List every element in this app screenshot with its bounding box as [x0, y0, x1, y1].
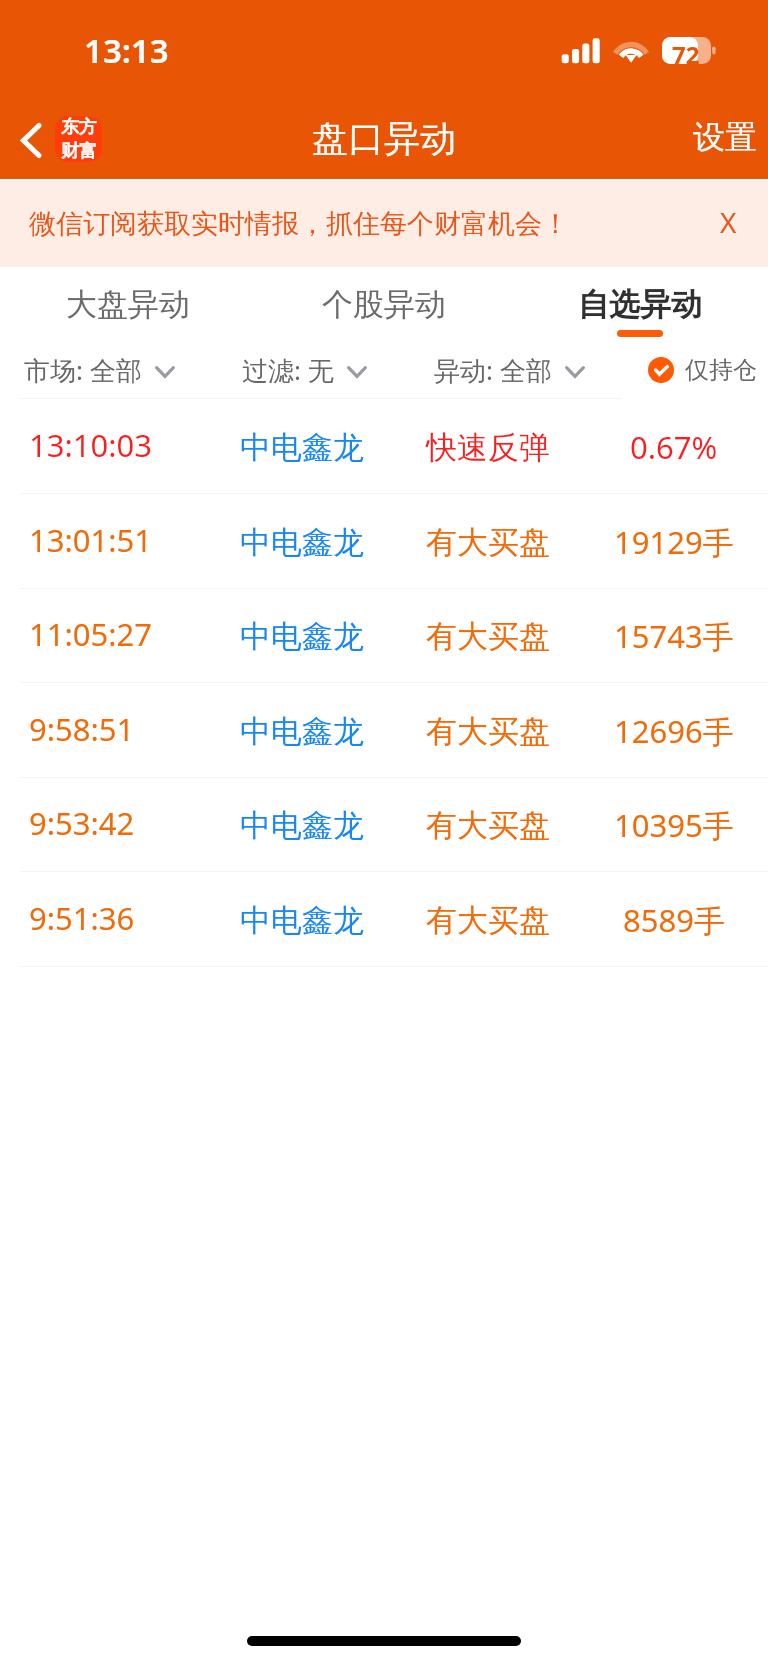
staticText: 11:05:27 [29, 613, 153, 655]
staticText: 过滤: 无 [242, 352, 334, 388]
staticText: 10395手 [614, 804, 734, 846]
staticText: 中电鑫龙 [240, 523, 364, 562]
button[interactable]: 仅持仓 [640, 347, 765, 393]
button[interactable]: 自选异动 [512, 267, 768, 340]
staticText: 有大买盘 [426, 617, 550, 656]
staticText: 13:01:51 [29, 519, 153, 561]
staticText: 异动: 全部 [434, 352, 552, 388]
staticText: 19129手 [614, 521, 734, 563]
staticText: 中电鑫龙 [240, 617, 364, 656]
staticText: 仅持仓 [685, 355, 757, 385]
staticText: 有大买盘 [426, 806, 550, 845]
staticText: 0.67% [630, 426, 718, 468]
button[interactable]: 个股异动 [256, 267, 512, 340]
staticText: 有大买盘 [426, 523, 550, 562]
staticText: 15743手 [614, 615, 734, 657]
staticText: 有大买盘 [426, 901, 550, 940]
button[interactable]: 大盘异动 [0, 267, 256, 340]
staticText: 东方 [61, 116, 97, 139]
staticText: 9:58:51 [29, 708, 135, 750]
button[interactable]: 异动: 全部 [426, 343, 593, 397]
button[interactable]: 市场: 全部 [16, 343, 183, 397]
staticText: 中电鑫龙 [240, 712, 364, 751]
staticText: 大盘异动 [66, 285, 190, 324]
staticText: 中电鑫龙 [240, 901, 364, 940]
staticText: 快速反弹 [426, 428, 550, 467]
staticText: 自选异动 [578, 285, 702, 324]
staticText: 9:51:36 [29, 897, 135, 939]
button[interactable]: 13:01:51 [0, 494, 768, 588]
button[interactable]: X [700, 191, 768, 257]
button[interactable]: 9:58:51 [0, 683, 768, 777]
staticText: 微信订阅获取实时情报，抓住每个财富机会！ [29, 207, 569, 241]
button[interactable]: 11:05:27 [0, 588, 768, 682]
staticText: 8589手 [623, 899, 725, 941]
button[interactable]: 9:51:36 [0, 872, 768, 966]
staticText: 72 [672, 38, 700, 65]
staticText: 财富 [61, 140, 97, 162]
staticText: 中电鑫龙 [240, 806, 364, 845]
staticText: 有大买盘 [426, 712, 550, 751]
button[interactable]: 9:53:42 [0, 777, 768, 871]
staticText: 12696手 [614, 710, 734, 752]
button[interactable]: Back [12, 108, 110, 170]
staticText: 中电鑫龙 [240, 428, 364, 467]
staticText: 13:10:03 [29, 424, 153, 466]
staticText: 个股异动 [322, 285, 446, 324]
staticText: 9:53:42 [29, 802, 135, 844]
button[interactable]: 设置 [677, 108, 768, 168]
staticText: 13:13 [84, 28, 169, 73]
button[interactable]: 13:10:03 [0, 399, 768, 493]
button[interactable]: 过滤: 无 [234, 343, 375, 397]
staticText: 市场: 全部 [24, 352, 142, 388]
staticText: 盘口异动 [312, 116, 456, 161]
